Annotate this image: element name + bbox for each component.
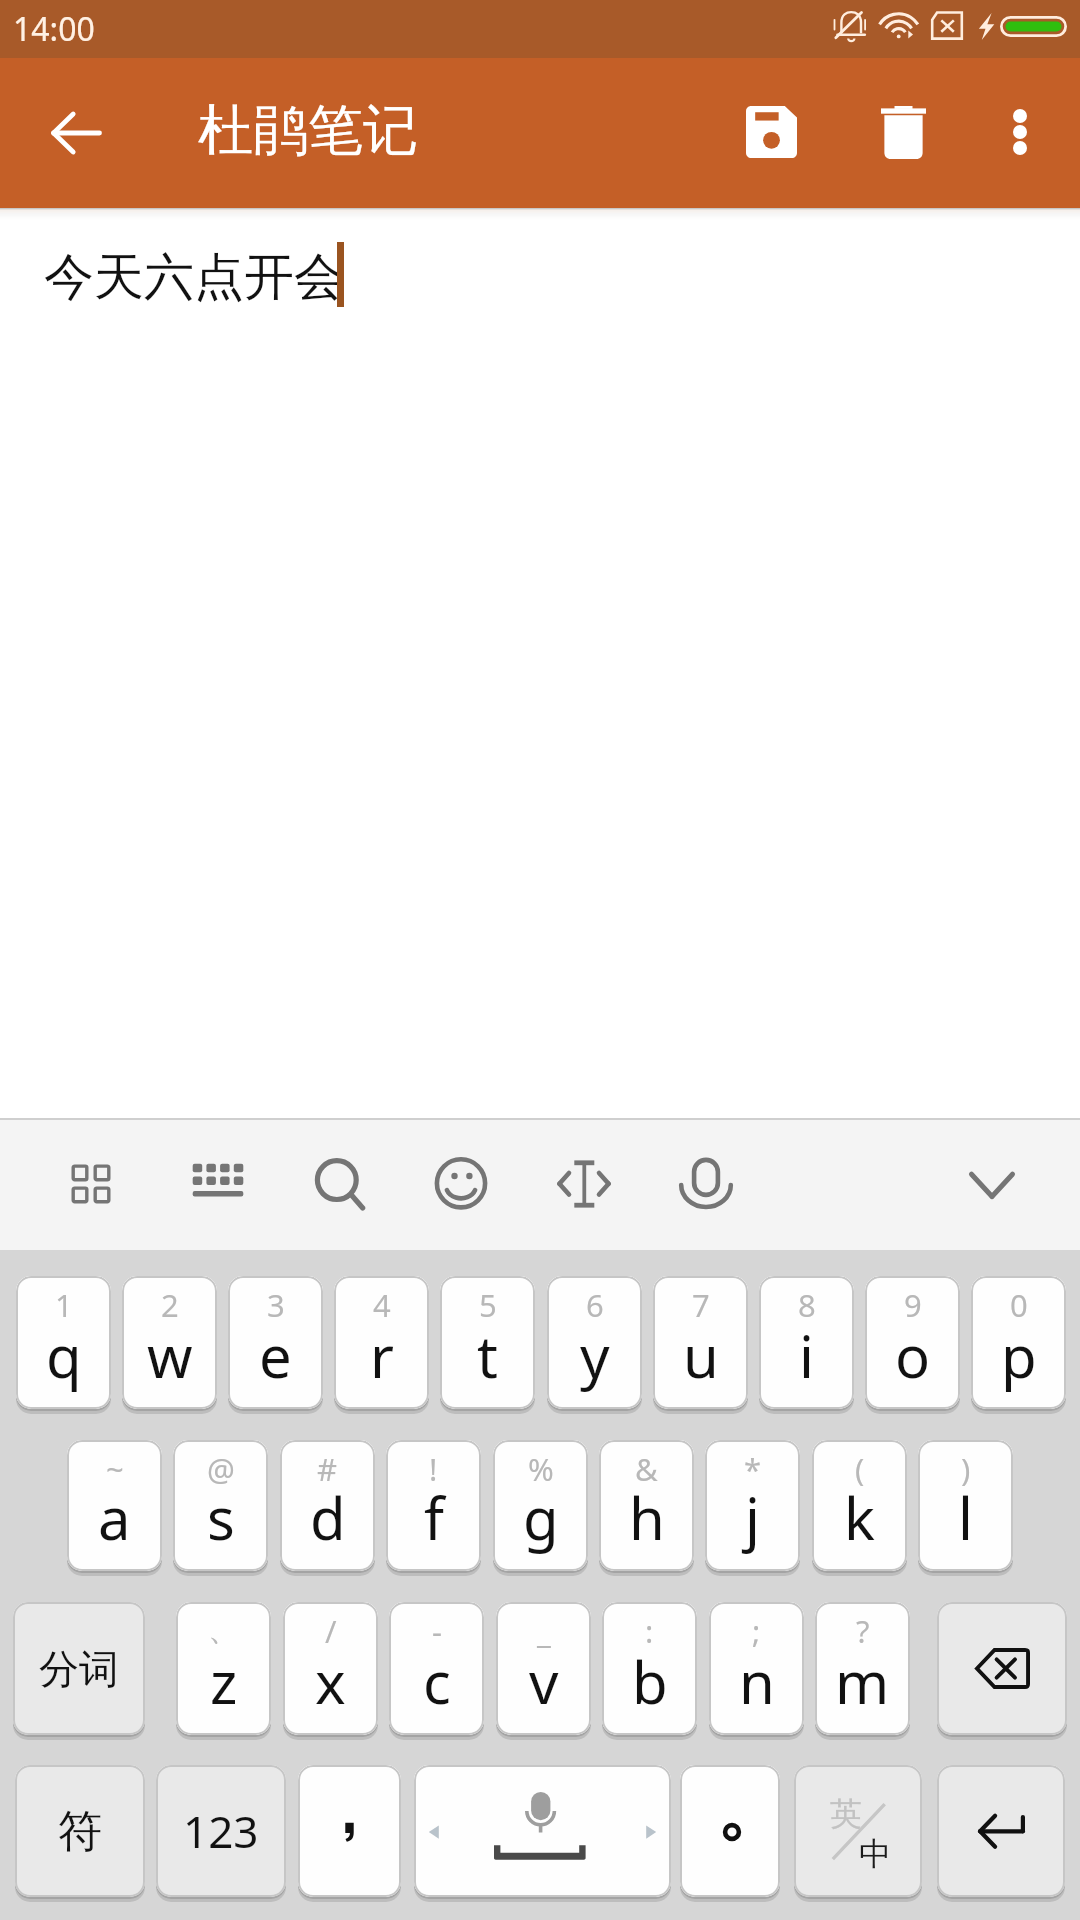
staticText: u bbox=[683, 1316, 719, 1395]
button[interactable]: / bbox=[283, 1602, 378, 1735]
staticText: @ bbox=[207, 1448, 235, 1490]
button[interactable]: 4 bbox=[334, 1276, 429, 1409]
staticText: x bbox=[315, 1642, 346, 1721]
button[interactable]: Space bbox=[414, 1765, 671, 1897]
staticText: 、 bbox=[208, 1610, 239, 1649]
staticText: 中 bbox=[859, 1834, 891, 1874]
staticText: z bbox=[210, 1642, 238, 1721]
staticText: h bbox=[629, 1478, 665, 1557]
button[interactable]: Edit text bbox=[544, 1144, 624, 1224]
button[interactable]: 1 bbox=[16, 1276, 111, 1409]
button[interactable]: - bbox=[389, 1602, 484, 1735]
staticText: : bbox=[645, 1610, 654, 1652]
staticText: 9 bbox=[904, 1284, 922, 1326]
button[interactable]: 、 bbox=[176, 1602, 271, 1735]
staticText: # bbox=[317, 1448, 338, 1490]
staticText: s bbox=[207, 1478, 235, 1557]
staticText: k bbox=[844, 1478, 875, 1557]
staticText: ) bbox=[961, 1448, 971, 1490]
button[interactable]: 7 bbox=[653, 1276, 748, 1409]
staticText: & bbox=[635, 1448, 658, 1490]
button[interactable]: 3 bbox=[228, 1276, 323, 1409]
button[interactable]: Voice input bbox=[666, 1144, 746, 1224]
staticText: w bbox=[147, 1316, 193, 1395]
staticText: % bbox=[528, 1448, 554, 1490]
staticText: t bbox=[477, 1316, 498, 1395]
staticText: p bbox=[1001, 1316, 1037, 1395]
button[interactable]: ! bbox=[386, 1440, 481, 1571]
staticText: 今天六点开会 bbox=[44, 246, 344, 309]
staticText: 7 bbox=[692, 1284, 710, 1326]
staticText: 0 bbox=[1010, 1284, 1028, 1326]
button[interactable]: 符 bbox=[15, 1765, 145, 1897]
button[interactable]: ( bbox=[812, 1440, 907, 1571]
button[interactable]: 9 bbox=[865, 1276, 960, 1409]
button[interactable]: _ bbox=[496, 1602, 591, 1735]
staticText: 14:00 bbox=[13, 7, 95, 51]
staticText: 英 bbox=[830, 1794, 862, 1834]
button[interactable]: & bbox=[599, 1440, 694, 1571]
staticText: 杜鹃笔记 bbox=[198, 96, 418, 165]
button[interactable]: 分词 bbox=[13, 1602, 145, 1735]
staticText: o bbox=[895, 1316, 931, 1395]
button[interactable]: 2 bbox=[122, 1276, 217, 1409]
button[interactable]: 123 bbox=[156, 1765, 286, 1897]
button[interactable]: Emoji bbox=[421, 1144, 501, 1224]
button[interactable]: Search bbox=[299, 1144, 379, 1224]
staticText: c bbox=[423, 1642, 451, 1721]
staticText: 3 bbox=[267, 1284, 285, 1326]
staticText: 符 bbox=[58, 1804, 102, 1859]
staticText: n bbox=[739, 1642, 775, 1721]
staticText: ! bbox=[429, 1448, 438, 1490]
staticText: f bbox=[424, 1478, 444, 1557]
staticText: ? bbox=[856, 1610, 870, 1652]
staticText: 2 bbox=[161, 1284, 179, 1326]
staticText: e bbox=[259, 1316, 292, 1395]
button[interactable]: 5 bbox=[440, 1276, 535, 1409]
button[interactable]: # bbox=[280, 1440, 375, 1571]
button[interactable]: Backspace bbox=[937, 1602, 1067, 1735]
staticText: v bbox=[529, 1642, 559, 1721]
staticText: 4 bbox=[373, 1284, 391, 1326]
staticText: a bbox=[98, 1478, 131, 1557]
button[interactable]: @ bbox=[173, 1440, 268, 1571]
button[interactable]: Save bbox=[719, 80, 823, 184]
staticText: b bbox=[632, 1642, 668, 1721]
button[interactable]: More options bbox=[968, 80, 1072, 184]
staticText: g bbox=[523, 1478, 559, 1557]
button[interactable]: % bbox=[493, 1440, 588, 1571]
button[interactable]: ; bbox=[709, 1602, 804, 1735]
button[interactable]: Back bbox=[24, 81, 128, 185]
staticText: l bbox=[958, 1478, 973, 1557]
button[interactable]: : bbox=[602, 1602, 697, 1735]
staticText: m bbox=[835, 1642, 890, 1721]
button[interactable]: Hide keyboard bbox=[952, 1144, 1032, 1224]
staticText: j bbox=[745, 1478, 760, 1557]
button[interactable]: * bbox=[705, 1440, 800, 1571]
button[interactable]: Enter bbox=[937, 1765, 1065, 1897]
button[interactable]: 8 bbox=[759, 1276, 854, 1409]
button[interactable]: Keyboard layouts bbox=[51, 1144, 131, 1224]
staticText: 8 bbox=[798, 1284, 816, 1326]
button[interactable]: 6 bbox=[547, 1276, 642, 1409]
button[interactable]: ) bbox=[918, 1440, 1013, 1571]
button[interactable]: Delete bbox=[851, 80, 955, 184]
staticText: r bbox=[370, 1316, 394, 1395]
staticText: i bbox=[799, 1316, 814, 1395]
staticText: - bbox=[432, 1610, 442, 1652]
staticText: d bbox=[310, 1478, 346, 1557]
staticText: 分词 bbox=[39, 1644, 119, 1694]
button[interactable]: ? bbox=[815, 1602, 910, 1735]
staticText: y bbox=[580, 1316, 610, 1395]
staticText: q bbox=[46, 1316, 82, 1395]
staticText: / bbox=[325, 1610, 337, 1652]
button[interactable]: Period bbox=[680, 1765, 780, 1897]
staticText: ( bbox=[855, 1448, 865, 1490]
staticText: ~ bbox=[106, 1448, 124, 1490]
button[interactable]: Keyboard bbox=[178, 1144, 258, 1224]
button[interactable]: Comma bbox=[298, 1765, 401, 1897]
button[interactable]: ~ bbox=[67, 1440, 162, 1571]
staticText: 6 bbox=[586, 1284, 604, 1326]
button[interactable]: Switch language bbox=[794, 1765, 922, 1897]
button[interactable]: 0 bbox=[971, 1276, 1066, 1409]
